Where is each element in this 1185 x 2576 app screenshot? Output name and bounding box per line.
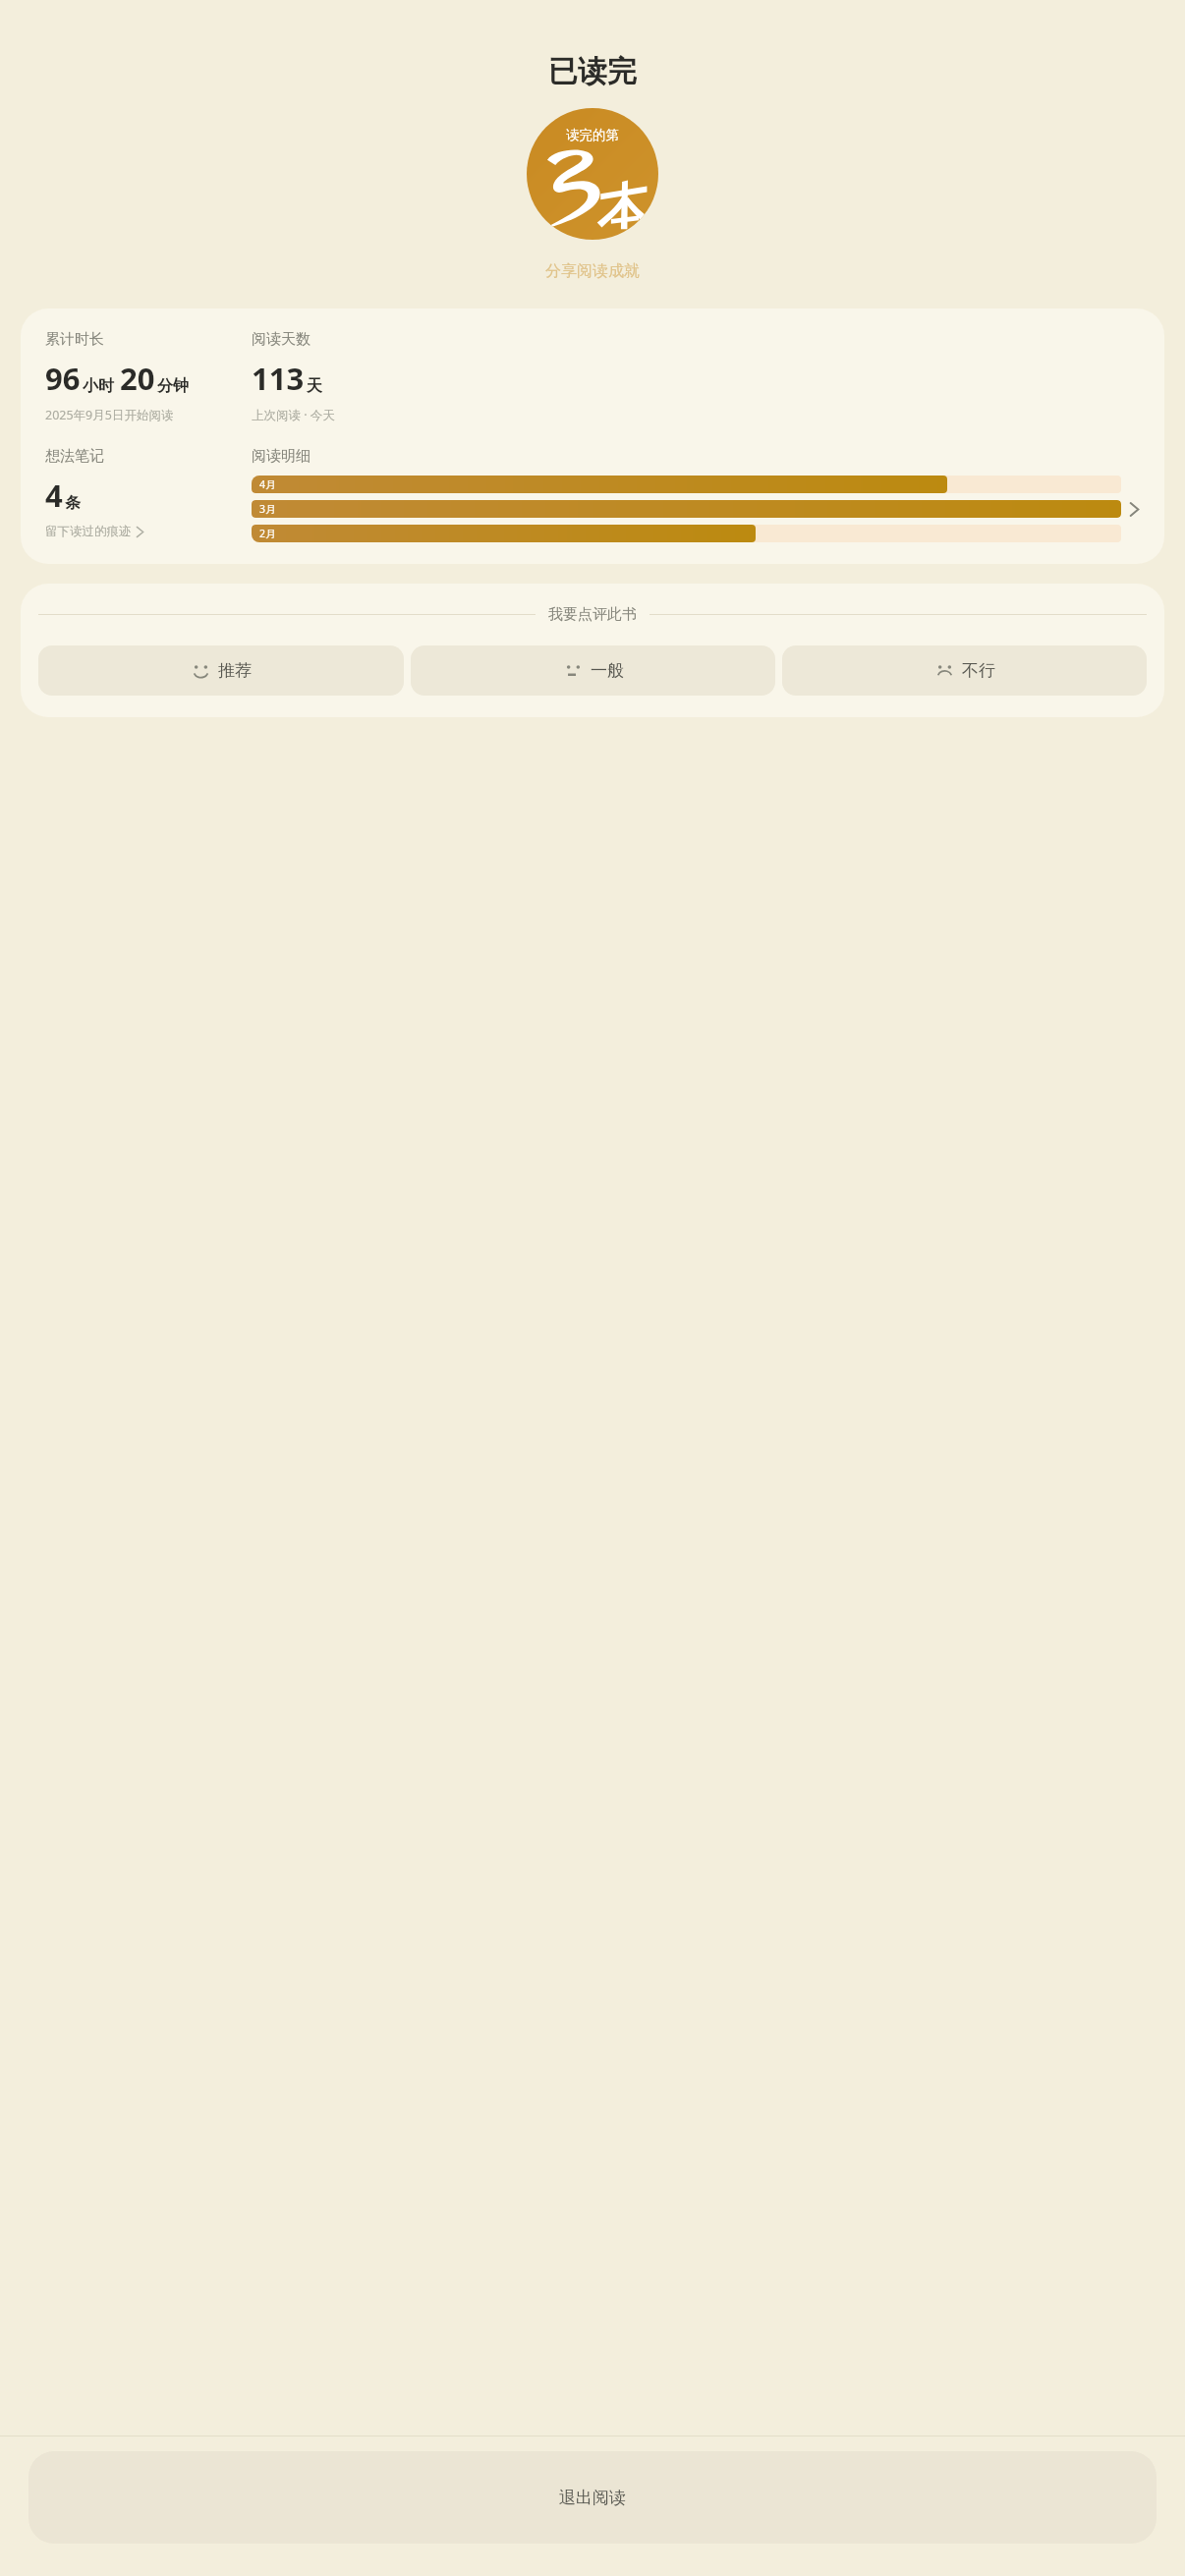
staticText: 不行 — [962, 660, 995, 681]
staticText: 小时 — [83, 376, 114, 396]
button[interactable]: 推荐 — [38, 645, 404, 696]
staticText: 分享阅读成就 — [545, 261, 640, 281]
button[interactable]: 留下读过的痕迹 — [45, 524, 144, 539]
staticText: 留下读过的痕迹 — [45, 524, 132, 539]
staticText: 分钟 — [157, 376, 189, 396]
staticText: 上次阅读 · 今天 — [252, 407, 335, 423]
staticText: 退出阅读 — [559, 2488, 626, 2508]
staticText: 想法笔记 — [45, 447, 104, 466]
staticText: 一般 — [591, 660, 624, 681]
button[interactable]: 4月 — [252, 476, 1140, 542]
staticText: 4 — [45, 475, 63, 516]
staticText: 已读完 — [548, 53, 637, 90]
staticText: 阅读天数 — [252, 330, 310, 349]
button[interactable]: 一般 — [411, 645, 775, 696]
staticText: 20 — [120, 358, 155, 399]
staticText: 阅读明细 — [252, 447, 310, 466]
staticText: 113 — [252, 358, 305, 399]
staticText: 条 — [65, 493, 81, 513]
staticText: 读完的第 — [566, 127, 619, 143]
staticText: 2025年9月5日开始阅读 — [45, 407, 174, 423]
button[interactable]: 分享阅读成就 — [536, 255, 649, 287]
staticText: 4月 — [259, 477, 276, 491]
staticText: 推荐 — [218, 660, 252, 681]
staticText: 2月 — [259, 527, 276, 540]
button[interactable]: 不行 — [782, 645, 1147, 696]
staticText: 3月 — [259, 502, 276, 516]
button[interactable]: 读完的第 — [527, 108, 658, 240]
staticText: 天 — [307, 376, 322, 396]
button[interactable]: 退出阅读 — [28, 2451, 1157, 2544]
staticText: 累计时长 — [45, 330, 104, 349]
staticText: 96 — [45, 358, 81, 399]
staticText: 我要点评此书 — [548, 605, 637, 624]
